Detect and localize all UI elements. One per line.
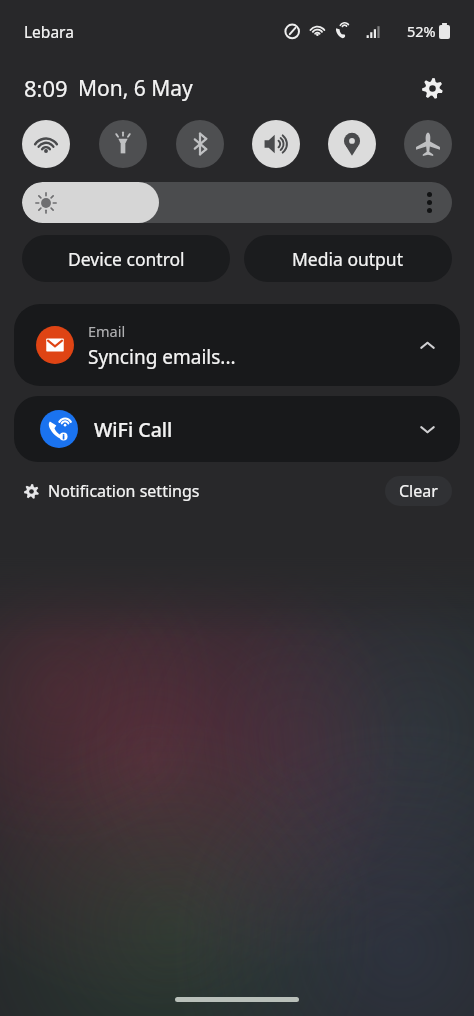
button[interactable]: Sound — [252, 120, 300, 168]
staticText: Notification settings — [48, 480, 200, 502]
button[interactable]: WiFi Call — [14, 396, 460, 462]
button[interactable]: Settings — [410, 66, 454, 110]
staticText: Media output — [292, 247, 404, 271]
button[interactable]: Notification settings — [20, 476, 204, 506]
button[interactable]: Bluetooth — [176, 120, 224, 168]
staticText: WiFi Call — [94, 416, 173, 443]
button[interactable]: Flashlight — [99, 120, 147, 168]
staticText: Mon, 6 May — [78, 74, 193, 103]
button[interactable]: Clear — [385, 476, 452, 506]
staticText: Email — [88, 321, 126, 341]
staticText: 8:09 — [24, 73, 68, 103]
button[interactable]: Airplane mode — [404, 120, 452, 168]
staticText: 52% — [407, 21, 436, 41]
button[interactable]: Brightness — [22, 182, 452, 223]
button[interactable]: Device control — [22, 235, 230, 282]
button[interactable]: Collapse — [410, 328, 444, 362]
button[interactable]: Location — [328, 120, 376, 168]
button[interactable]: Media output — [244, 235, 452, 282]
button[interactable]: Expand — [410, 412, 444, 446]
staticText: Syncing emails... — [88, 344, 236, 370]
staticText: Device control — [68, 247, 185, 271]
button[interactable]: Email — [14, 304, 460, 386]
button[interactable]: Wi-Fi — [22, 120, 70, 168]
staticText: Clear — [399, 480, 438, 502]
staticText: Lebara — [24, 21, 74, 42]
